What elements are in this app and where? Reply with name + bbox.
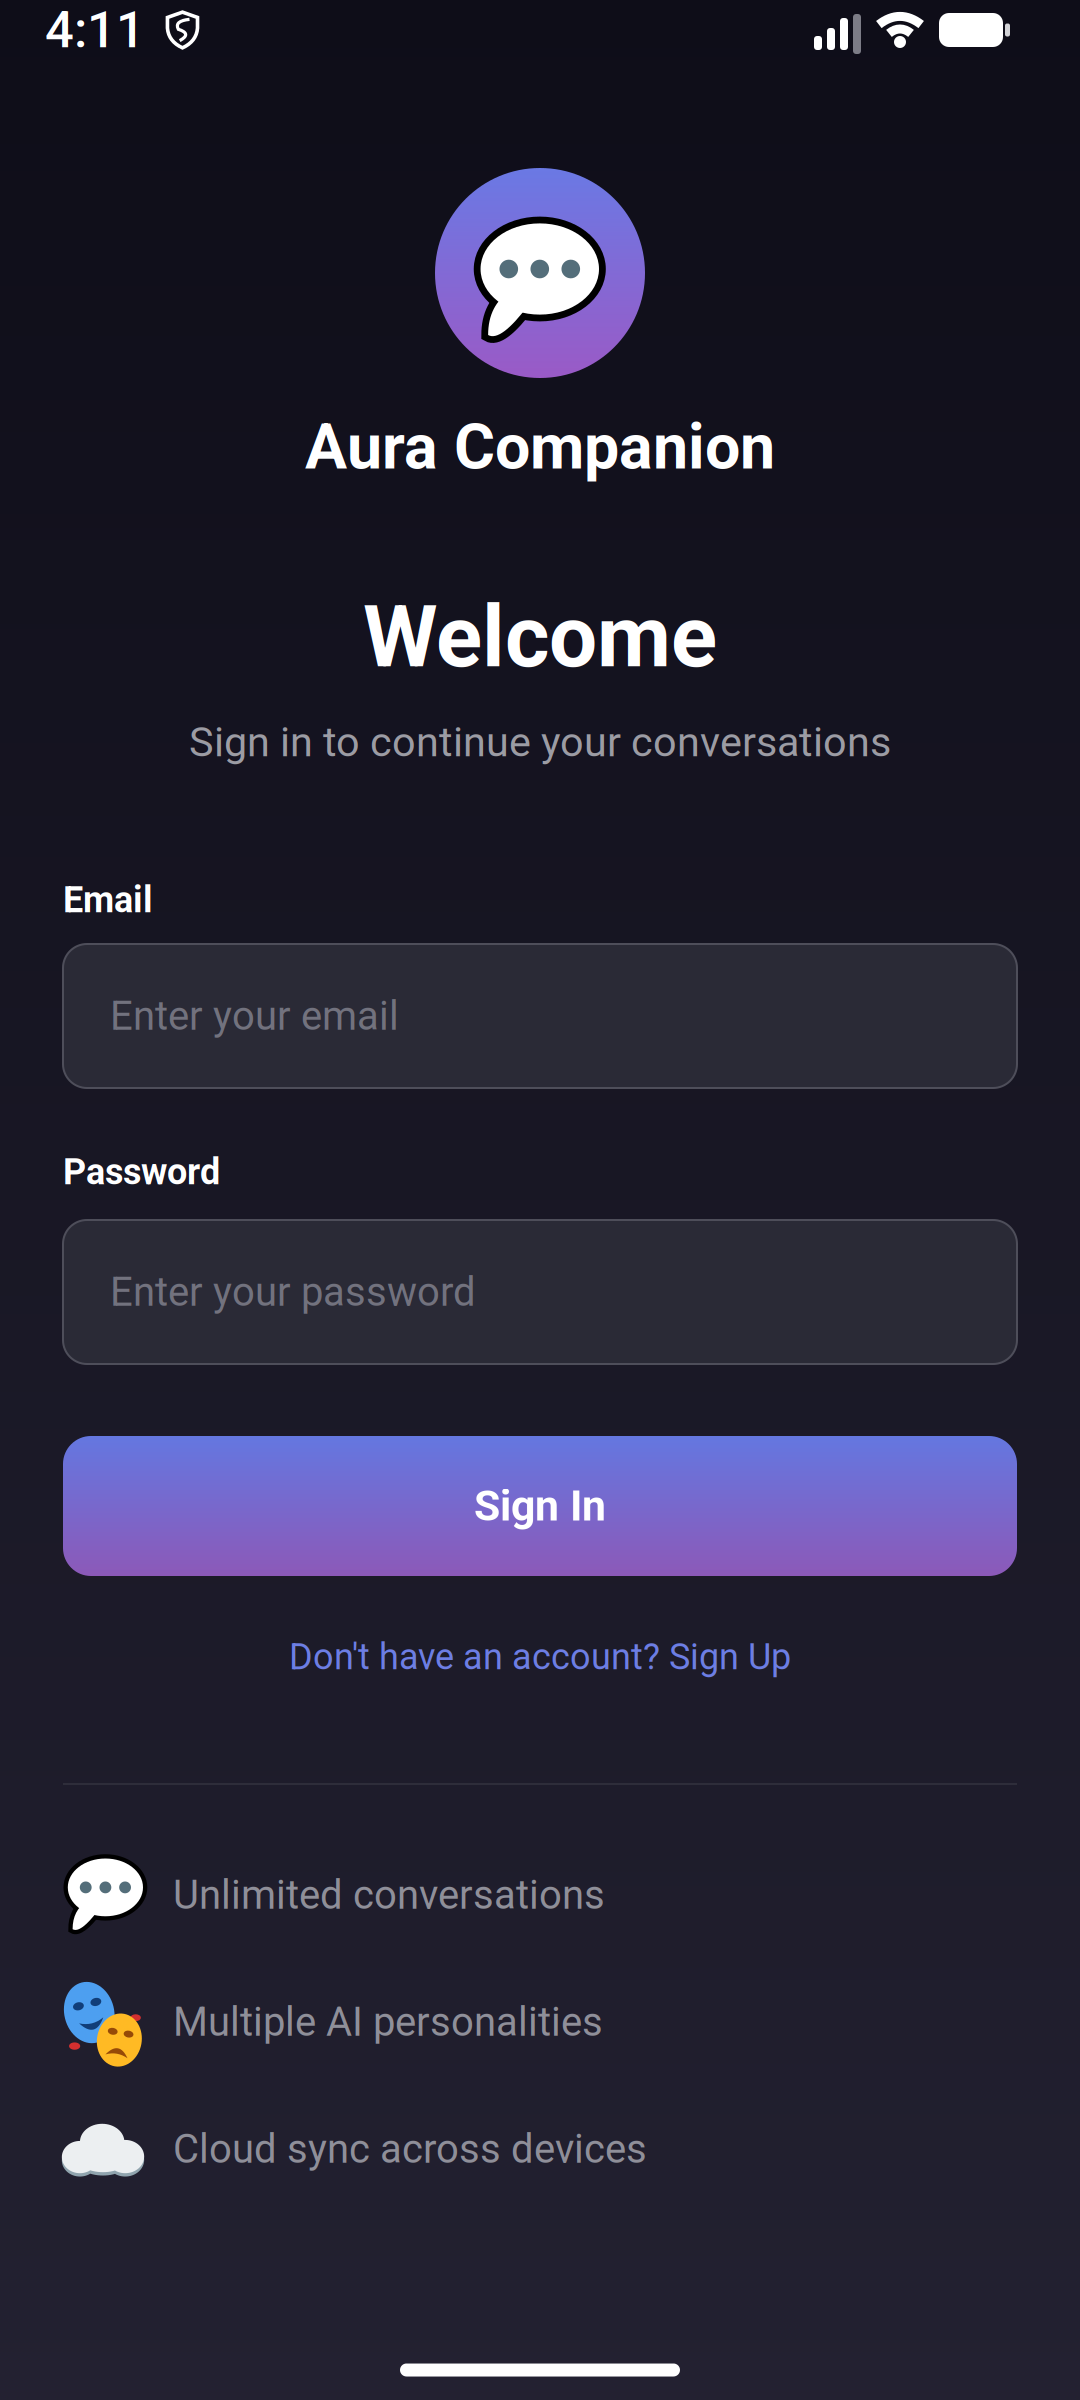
staticText: Email (63, 879, 153, 920)
button[interactable]: Enter your email (63, 944, 1017, 1088)
staticText: 4:11 (45, 1, 145, 59)
staticText: Enter your email (110, 993, 399, 1039)
staticText: Multiple AI personalities (173, 1999, 603, 2045)
staticText: Password (63, 1151, 220, 1192)
button[interactable]: Don't have an account? Sign Up (289, 1636, 791, 1677)
staticText: Sign In (474, 1482, 606, 1530)
staticText: Don't have an account? Sign Up (289, 1636, 791, 1677)
staticText: Welcome (363, 588, 717, 686)
button[interactable]: Sign In (63, 1436, 1017, 1576)
staticText: Enter your password (110, 1269, 476, 1315)
staticText: Sign in to continue your conversations (189, 718, 891, 766)
staticText: Aura Companion (305, 411, 775, 483)
button[interactable]: Enter your password (63, 1220, 1017, 1364)
staticText: Cloud sync across devices (173, 2126, 647, 2172)
staticText: Unlimited conversations (173, 1872, 605, 1918)
